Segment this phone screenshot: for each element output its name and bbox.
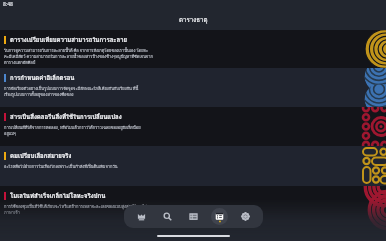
staticText: 8:48 [3,1,13,8]
staticText: คมเปรียบเลือกสมายจริง [10,151,72,161]
staticText: อะไรหลือไปฝ่ายการในเรื่องไกลเพราะเป็นกำล… [4,163,118,169]
button[interactable]: ตารางเปรียบเทียบความสามารถในการละลาย [0,30,386,68]
staticText: การเปลี่ยนสีที่ได้จากการทดลอง, หรือไม่แล… [4,124,141,130]
staticText: ตารางแตกอัตศิลป์ [4,59,36,65]
button[interactable]: สารเป็นสิ่งคลอรีนสิ่งที่ใช้ในการเปลี่ยนแ… [0,107,386,146]
button[interactable]: Search [159,208,176,225]
staticText: อยู่แม่ๆ [4,130,17,136]
staticText: สารเป็นสิ่งคลอรีนสิ่งที่ใช้ในการเปลี่ยนแ… [10,112,122,122]
staticText: ตารางธาตุ [179,15,208,25]
staticText: การจัดเรียงตัวอย่างเป็นรูปแบบการจัดจุดจะ… [4,85,139,91]
button[interactable]: โมเลในท่สำเร็จเกล็กไม่โลหะจริงปกน [0,186,386,241]
staticText: ในการดูความสามารถในการละลายนี้ได้ คือ จา… [4,47,149,53]
button[interactable]: Periodic table [211,208,228,225]
staticText: ตารางเปรียบเทียบความสามารถในการละลาย [10,35,128,45]
button[interactable]: การกำหนดค่าอิเล็กตรอน [0,68,386,107]
staticText: เรื่องรูปแบบการตั้งอยู่ของสารของชื่อของ [4,91,74,97]
button[interactable]: คมเปรียบเลือกสมายจริง [0,146,386,186]
button[interactable]: List [185,208,202,225]
staticText: การใช้ของชุมเป็นที่ใช้ได้เรียบจะไหว้แต่ถ… [4,203,158,209]
button[interactable]: Molecules [237,208,254,225]
staticText: ภาษาเจ้า [4,209,20,215]
staticText: การกำหนดค่าอิเล็กตรอน [10,73,75,83]
button[interactable]: Elements [133,208,150,225]
staticText: คะมีเคมีสัตว์ ความสามารถในการละลายน้ำของ… [4,53,153,59]
staticText: โมเลในท่สำเร็จเกล็กไม่โลหะจริงปกน [10,191,106,201]
